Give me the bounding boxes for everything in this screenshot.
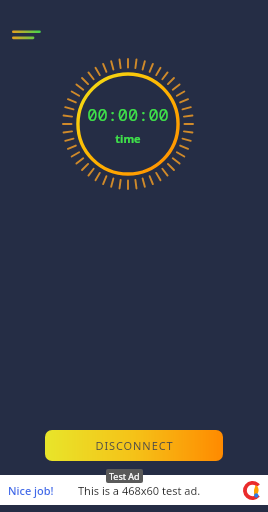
button[interactable]: DISCONNECT bbox=[45, 430, 223, 461]
other: AdMob bbox=[243, 481, 262, 500]
staticText: This is a 468x60 test ad. bbox=[78, 483, 201, 498]
button[interactable]: Nice job! bbox=[0, 475, 268, 505]
staticText: time bbox=[115, 131, 141, 146]
staticText: Nice job! bbox=[8, 483, 54, 498]
staticText: Test Ad bbox=[109, 470, 140, 482]
button[interactable]: Menu bbox=[8, 22, 48, 50]
staticText: 00:00:00 bbox=[87, 103, 169, 126]
staticText: DISCONNECT bbox=[95, 438, 174, 453]
